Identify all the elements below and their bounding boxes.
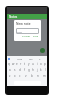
button[interactable]: z <box>7 73 12 79</box>
staticText: v <box>25 74 27 78</box>
button[interactable]: t <box>23 61 27 67</box>
button[interactable]: q <box>7 61 11 67</box>
button[interactable]: g <box>27 67 31 73</box>
button[interactable]: CANCEL <box>21 34 32 39</box>
button[interactable]: s <box>12 67 17 73</box>
button[interactable]: SAVE <box>32 34 40 39</box>
button[interactable]: o <box>39 61 43 67</box>
staticText: note <box>17 57 23 60</box>
button[interactable]: f <box>22 67 27 73</box>
staticText: p <box>44 62 46 66</box>
button[interactable]: a <box>7 67 12 73</box>
staticText: x <box>14 74 16 78</box>
staticText: b <box>31 74 33 78</box>
button[interactable]: k <box>39 67 43 73</box>
staticText: Notes <box>9 15 18 19</box>
staticText: z <box>9 74 11 78</box>
button[interactable]: p <box>43 61 47 67</box>
staticText: q <box>8 62 10 66</box>
staticText: y <box>28 62 30 66</box>
staticText: a <box>9 68 11 72</box>
button[interactable]: w <box>11 61 15 67</box>
staticText: a <box>39 57 41 60</box>
staticText: f <box>24 68 26 72</box>
staticText: s <box>14 68 16 72</box>
staticText: o <box>40 62 42 66</box>
staticText: the <box>29 57 33 60</box>
button[interactable]: j <box>35 67 39 73</box>
button[interactable]: x <box>12 73 17 79</box>
button[interactable]: v <box>23 73 29 79</box>
staticText: n <box>37 74 39 78</box>
button[interactable]: y <box>27 61 31 67</box>
staticText: c <box>19 74 21 78</box>
button[interactable]: l <box>43 67 47 73</box>
button[interactable]: i <box>35 61 39 67</box>
staticText: j <box>37 68 38 72</box>
button[interactable]: e <box>15 61 19 67</box>
staticText: l <box>45 68 46 72</box>
button[interactable]: u <box>31 61 35 67</box>
button[interactable]: r <box>19 61 23 67</box>
staticText: e <box>16 62 18 66</box>
button[interactable]: d <box>17 67 22 73</box>
staticText: r <box>20 62 22 66</box>
button[interactable]: b <box>29 73 35 79</box>
staticText: g <box>28 68 30 72</box>
button[interactable]: n <box>35 73 41 79</box>
staticText: u <box>32 62 34 66</box>
button[interactable]: m <box>41 73 47 79</box>
staticText: d <box>19 68 21 72</box>
staticText: t <box>24 62 26 66</box>
staticText: New note <box>16 22 31 26</box>
staticText: h <box>32 68 34 72</box>
button[interactable]: h <box>31 67 35 73</box>
staticText: m <box>43 74 46 78</box>
staticText: Title <box>17 30 22 33</box>
staticText: i <box>37 62 38 66</box>
staticText: k <box>40 68 42 72</box>
button[interactable]: c <box>17 73 23 79</box>
staticText: w <box>12 62 15 66</box>
button[interactable]: Add note <box>40 48 45 53</box>
